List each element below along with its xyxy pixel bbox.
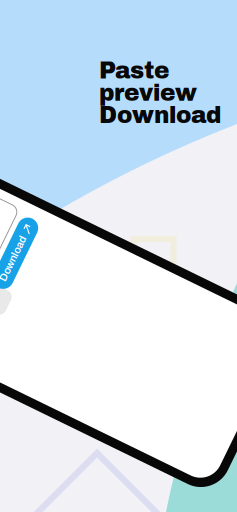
staticText: Paste preview Download xyxy=(99,58,221,128)
button[interactable]: Download xyxy=(74,227,151,248)
staticText: Download xyxy=(82,231,131,243)
